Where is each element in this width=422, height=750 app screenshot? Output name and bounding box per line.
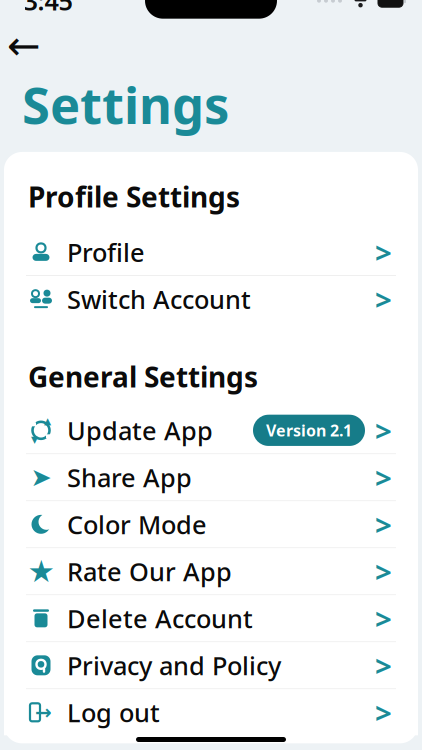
staticText: > [375,458,392,497]
staticText: Switch Account [67,282,251,316]
staticText: > [375,599,392,638]
staticText: ➤ [30,463,51,492]
staticText: Share App [67,460,192,494]
staticText: General Settings [28,358,258,395]
staticText: Color Mode [67,507,207,541]
staticText: > [375,411,392,450]
staticText: > [375,552,392,591]
staticText: > [375,646,392,685]
staticText: ★ [27,554,54,589]
staticText: Profile Settings [28,178,240,215]
button[interactable]: ★ [4,548,418,594]
staticText: ▼ [31,434,38,445]
button[interactable]: Privacy and Policy [4,642,418,688]
button[interactable]: Back [2,29,46,63]
staticText: Log out [67,695,160,729]
staticText: ← [7,23,41,68]
staticText: 3:45 [23,0,72,17]
staticText: Version 2.1 [266,420,352,441]
button[interactable]: Delete Account [4,595,418,641]
staticText: Delete Account [67,601,253,635]
staticText: > [375,693,392,732]
button[interactable]: ▲ [4,407,418,453]
staticText: Privacy and Policy [67,648,281,682]
staticText: > [375,280,392,319]
button[interactable]: Switch Account [4,276,418,322]
staticText: Update App [67,413,213,447]
staticText: → [35,701,52,724]
staticText: > [375,233,392,272]
staticText: > [375,505,392,544]
button[interactable]: → [4,689,418,735]
staticText: Settings [22,71,229,138]
button[interactable]: ➤ [4,454,418,500]
staticText: ▲ [44,416,51,426]
staticText: Profile [67,235,145,269]
button[interactable]: Profile [4,229,418,275]
staticText: Rate Our App [67,554,232,588]
button[interactable]: Color Mode [4,501,418,547]
